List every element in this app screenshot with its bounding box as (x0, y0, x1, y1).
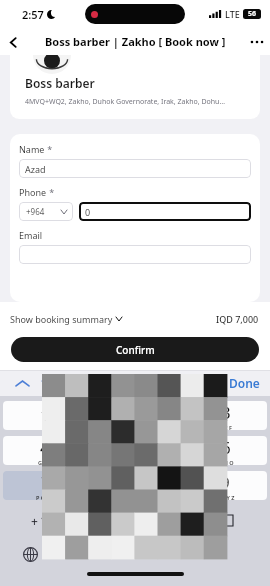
button[interactable]: 2 (93, 401, 177, 430)
staticText: Confirm (116, 343, 155, 357)
staticText: Name (19, 143, 45, 155)
staticText: Email (19, 229, 43, 241)
staticText: +964 (26, 206, 45, 217)
button[interactable]: Previous field (13, 373, 31, 393)
button[interactable]: Azad (19, 159, 251, 178)
staticText: * (47, 186, 55, 198)
staticText: Azad (25, 163, 46, 175)
staticText: 7 (41, 471, 51, 494)
staticText: 1 (40, 404, 50, 427)
button[interactable]: 4 (3, 436, 87, 465)
button[interactable]: 7 (3, 471, 87, 500)
button[interactable]: Next field (39, 373, 57, 393)
staticText: 4 (40, 436, 50, 459)
button[interactable]: +964 (19, 202, 73, 221)
staticText: P Q R S (36, 494, 55, 500)
staticText: D E F (219, 424, 232, 430)
staticText: 2:57 (22, 7, 44, 22)
staticText: M N O (217, 459, 234, 465)
staticText: 9 (220, 471, 230, 494)
staticText: Show booking summary (10, 313, 113, 325)
staticText: G H I (38, 459, 52, 465)
staticText: W X Y Z (215, 494, 235, 500)
button[interactable]: 0 (79, 202, 251, 221)
staticText: LTE (225, 8, 240, 20)
staticText: + * # (31, 513, 59, 529)
staticText: 8 (130, 471, 140, 494)
button[interactable]: Change keyboard (20, 544, 40, 564)
staticText: 0 (85, 206, 91, 218)
staticText: Done (229, 375, 260, 391)
button[interactable]: Show booking summary (10, 313, 122, 325)
staticText: 0 (130, 509, 140, 532)
button[interactable]: + * # (3, 506, 87, 535)
staticText: * (45, 143, 53, 155)
staticText: Boss barber (25, 75, 95, 91)
button[interactable]: 3 (183, 401, 267, 430)
button[interactable]: More options (244, 29, 270, 55)
button[interactable]: Done (229, 375, 260, 391)
button[interactable]: 8 (93, 471, 177, 500)
staticText: 4MVQ+WQ2, Zakho, Duhok Governorate, Irak… (25, 97, 225, 107)
button[interactable]: 1 (3, 401, 87, 430)
button[interactable]: Back (0, 29, 26, 55)
button[interactable]: Confirm (11, 337, 259, 362)
staticText: 2 (130, 401, 140, 424)
staticText: 3 (221, 401, 231, 424)
button[interactable]: Delete (183, 506, 267, 535)
staticText: 56 (248, 9, 257, 19)
staticText: Boss barber | Zakho [ Book now ] (45, 34, 226, 49)
staticText: Phone (19, 186, 47, 198)
button[interactable]: 0 (93, 506, 177, 535)
staticText: IQD 7,000 (216, 313, 259, 325)
button[interactable]: 5 (93, 436, 177, 465)
staticText: J K L (129, 459, 141, 465)
button[interactable]: 6 (183, 436, 267, 465)
staticText: A B C (128, 424, 142, 430)
button[interactable] (19, 245, 251, 264)
staticText: 6 (221, 436, 231, 459)
staticText: 5 (130, 436, 140, 459)
button[interactable]: 9 (183, 471, 267, 500)
